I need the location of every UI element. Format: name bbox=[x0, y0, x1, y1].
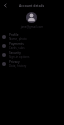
staticText: Sign-in options bbox=[9, 55, 30, 59]
staticText: Cards, subs bbox=[9, 46, 25, 50]
staticText: Payments bbox=[9, 42, 24, 46]
staticText: Name, photo bbox=[9, 37, 27, 41]
staticText: Security bbox=[9, 51, 21, 55]
staticText: Privacy bbox=[9, 60, 20, 64]
button[interactable]: Privacy bbox=[0, 59, 64, 68]
button[interactable]: Payments bbox=[0, 41, 64, 50]
button[interactable]: Security bbox=[0, 50, 64, 59]
button[interactable]: Profile picture bbox=[26, 12, 37, 23]
staticText: Profile bbox=[9, 33, 19, 37]
button[interactable]: Back bbox=[1, 1, 9, 9]
staticText: Data, history bbox=[9, 64, 27, 68]
button[interactable]: Profile bbox=[0, 32, 64, 41]
staticText: Account details bbox=[19, 3, 45, 8]
staticText: jane@gmail.com bbox=[0, 25, 64, 29]
